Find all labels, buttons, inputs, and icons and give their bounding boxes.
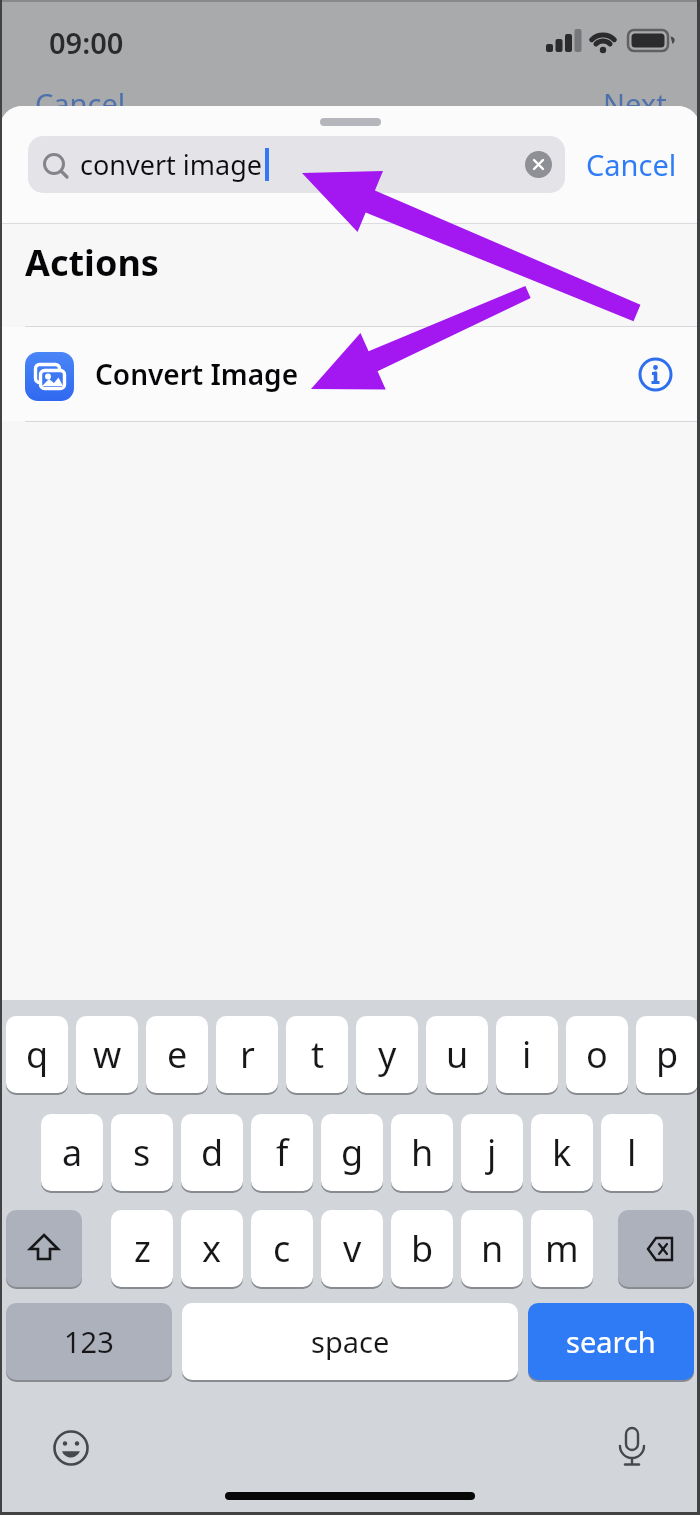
staticText: o — [586, 1030, 608, 1079]
staticText: u — [446, 1030, 469, 1079]
button[interactable]: s — [111, 1114, 173, 1191]
button[interactable]: i — [496, 1016, 558, 1093]
staticText: a — [62, 1128, 83, 1177]
staticText: z — [134, 1224, 151, 1273]
button[interactable]: u — [426, 1016, 488, 1093]
staticText: j — [487, 1128, 497, 1177]
staticText: i — [522, 1030, 532, 1079]
staticText: v — [343, 1224, 362, 1273]
staticText: y — [378, 1030, 397, 1079]
staticText: 09:00 — [49, 23, 124, 62]
button[interactable]: w — [76, 1016, 138, 1093]
button[interactable]: 123 — [6, 1303, 172, 1380]
button[interactable]: b — [391, 1210, 453, 1287]
staticText: space — [311, 1322, 390, 1361]
staticText: d — [201, 1128, 224, 1177]
staticText: Cancel — [586, 145, 677, 184]
button[interactable]: p — [636, 1016, 698, 1093]
button[interactable]: Convert Image — [0, 327, 700, 421]
staticText: e — [167, 1030, 188, 1079]
button[interactable]: e — [146, 1016, 208, 1093]
button[interactable] — [618, 1210, 694, 1287]
staticText: t — [311, 1030, 324, 1079]
button[interactable] — [637, 356, 674, 393]
staticText: q — [26, 1030, 49, 1079]
staticText: s — [133, 1128, 151, 1177]
staticText: g — [341, 1128, 364, 1177]
button[interactable]: o — [566, 1016, 628, 1093]
button[interactable]: c — [251, 1210, 313, 1287]
staticText: n — [481, 1224, 504, 1273]
button[interactable]: a — [41, 1114, 103, 1191]
button[interactable]: h — [391, 1114, 453, 1191]
button[interactable]: d — [181, 1114, 243, 1191]
staticText: c — [273, 1224, 291, 1273]
staticText: h — [411, 1128, 434, 1177]
button[interactable] — [52, 1429, 90, 1467]
staticText: p — [656, 1030, 679, 1079]
button[interactable] — [6, 1210, 82, 1287]
staticText: m — [545, 1224, 579, 1273]
button[interactable]: convert image — [28, 136, 565, 193]
button[interactable]: space — [182, 1303, 518, 1380]
staticText: x — [202, 1224, 222, 1273]
button[interactable]: j — [461, 1114, 523, 1191]
staticText: convert image — [80, 146, 263, 183]
button[interactable]: y — [356, 1016, 418, 1093]
staticText: search — [566, 1322, 656, 1361]
button[interactable]: l — [601, 1114, 663, 1191]
staticText: Next — [603, 84, 667, 123]
staticText: 123 — [64, 1322, 114, 1361]
staticText: Convert Image — [95, 355, 299, 393]
button[interactable]: m — [531, 1210, 593, 1287]
button[interactable]: q — [6, 1016, 68, 1093]
button[interactable]: x — [181, 1210, 243, 1287]
staticText: r — [240, 1030, 255, 1079]
button[interactable]: z — [111, 1210, 173, 1287]
button[interactable]: v — [321, 1210, 383, 1287]
staticText: l — [627, 1128, 637, 1177]
button[interactable]: search — [528, 1303, 694, 1380]
button[interactable] — [614, 1426, 650, 1470]
staticText: Cancel — [35, 84, 126, 123]
button[interactable]: k — [531, 1114, 593, 1191]
staticText: k — [552, 1128, 572, 1177]
button[interactable]: Cancel — [575, 136, 687, 193]
button[interactable]: g — [321, 1114, 383, 1191]
button[interactable]: r — [216, 1016, 278, 1093]
button[interactable]: t — [286, 1016, 348, 1093]
staticText: b — [411, 1224, 434, 1273]
staticText: Actions — [25, 238, 159, 287]
button[interactable]: n — [461, 1210, 523, 1287]
staticText: f — [276, 1128, 289, 1177]
button[interactable] — [525, 151, 552, 178]
staticText: w — [93, 1030, 122, 1079]
button[interactable]: f — [251, 1114, 313, 1191]
